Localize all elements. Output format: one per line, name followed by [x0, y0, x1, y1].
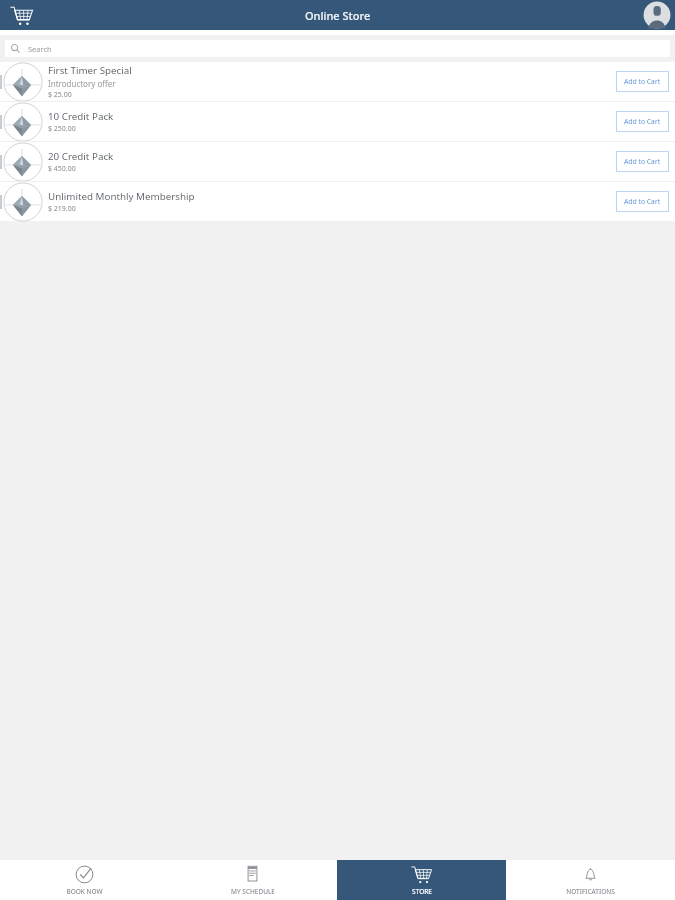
button[interactable]: Add to Cart [616, 191, 669, 212]
staticText: $ 450.00 [48, 164, 76, 174]
staticText: $ 250.00 [48, 124, 76, 134]
staticText: Add to Cart [624, 157, 661, 166]
button[interactable]: MY SCHEDULE [168, 860, 337, 900]
staticText: First Timer Special [48, 64, 132, 77]
staticText: Add to Cart [624, 117, 661, 126]
staticText: Online Store [305, 8, 371, 23]
staticText: BOOK NOW [66, 887, 103, 896]
button[interactable]: BOOK NOW [0, 860, 168, 900]
button[interactable]: 10 Credit Pack [0, 102, 675, 141]
staticText: Add to Cart [624, 77, 661, 86]
staticText: $ 219.00 [48, 204, 76, 214]
button[interactable]: 20 Credit Pack [0, 142, 675, 181]
button[interactable]: Unlimited Monthly Membership [0, 182, 675, 221]
button[interactable]: Profile [643, 1, 671, 29]
button[interactable]: Add to Cart [616, 111, 669, 132]
staticText: NOTIFICATIONS [566, 887, 615, 896]
staticText: $ 25.00 [48, 90, 72, 100]
button[interactable]: NOTIFICATIONS [506, 860, 675, 900]
staticText: 20 Credit Pack [48, 150, 114, 163]
button[interactable]: Add to Cart [616, 151, 669, 172]
staticText: 10 Credit Pack [48, 110, 114, 123]
staticText: Unlimited Monthly Membership [48, 190, 195, 203]
staticText: Search [28, 44, 52, 54]
staticText: MY SCHEDULE [231, 887, 275, 896]
staticText: Introductory offer [48, 78, 116, 89]
button[interactable]: First Timer Special [0, 62, 675, 101]
button[interactable]: Search [5, 40, 670, 57]
button[interactable]: Cart [7, 1, 35, 29]
button[interactable]: STORE [337, 860, 506, 900]
staticText: STORE [412, 887, 432, 896]
button[interactable]: Add to Cart [616, 71, 669, 92]
staticText: Add to Cart [624, 197, 661, 206]
